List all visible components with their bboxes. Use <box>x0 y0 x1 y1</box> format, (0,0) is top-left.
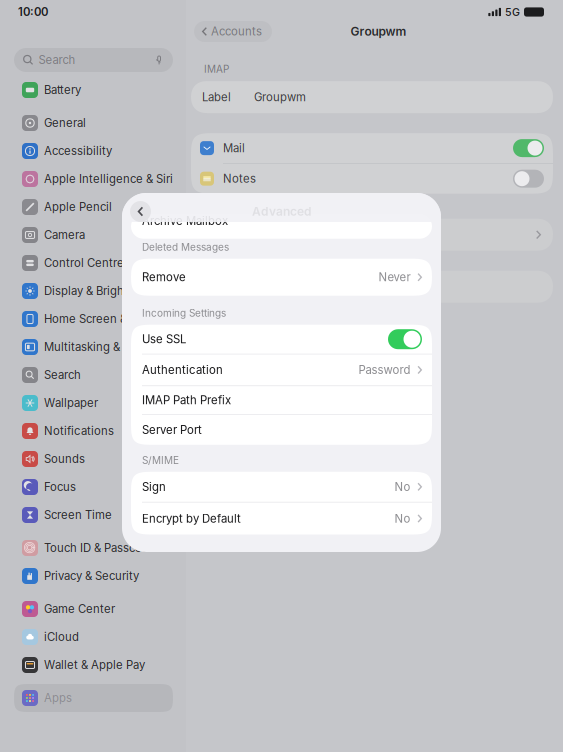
button[interactable]: Home Screen & Apps <box>14 305 173 333</box>
staticText: IMAP <box>204 63 229 75</box>
button[interactable]: Focus <box>14 473 173 501</box>
button[interactable]: Authentication <box>131 354 432 385</box>
staticText: Apps <box>44 691 72 705</box>
button[interactable]: Apple Intelligence & Siri <box>14 165 173 193</box>
staticText: 10:00 <box>18 5 48 19</box>
button[interactable]: Search <box>14 48 173 72</box>
staticText: Notes <box>223 172 256 185</box>
staticText: Sounds <box>44 452 85 466</box>
staticText: Server Port <box>142 423 202 437</box>
button[interactable]: Battery <box>14 76 173 104</box>
button[interactable]: Encrypt by Default <box>131 502 432 534</box>
staticText: No <box>394 480 410 494</box>
staticText: Archive Mailbox <box>142 214 228 228</box>
button[interactable]: Search <box>14 361 173 389</box>
staticText: Search <box>44 368 81 382</box>
staticText: Wallet & Apple Pay <box>44 658 145 672</box>
staticText: Apple Intelligence & Siri <box>44 172 173 186</box>
button[interactable]: Use SSL <box>131 325 432 354</box>
button[interactable]: Accessibility <box>14 137 173 165</box>
staticText: Authentication <box>142 363 223 377</box>
staticText: Groupwm <box>254 90 306 104</box>
staticText: Multitasking & Gestures <box>44 340 172 354</box>
staticText: Screen Time <box>44 508 112 522</box>
staticText: S/MIME <box>142 454 179 466</box>
button[interactable]: Notifications <box>14 417 173 445</box>
staticText: Privacy & Security <box>44 569 139 583</box>
staticText: Deleted Messages <box>142 241 229 253</box>
button[interactable]: Wallpaper <box>14 389 173 417</box>
button[interactable]: Sounds <box>14 445 173 473</box>
staticText: Game Center <box>44 602 115 616</box>
button[interactable]: Multitasking & Gestures <box>14 333 173 361</box>
button[interactable]: Sign <box>131 472 432 502</box>
staticText: General <box>44 116 86 130</box>
staticText: 5G <box>505 5 520 18</box>
button[interactable]: iCloud <box>14 623 173 651</box>
button[interactable]: Accounts <box>194 21 272 42</box>
staticText: Remove <box>142 270 186 284</box>
button[interactable]: Camera <box>14 221 173 249</box>
staticText: Search <box>38 53 75 67</box>
staticText: Password <box>358 363 410 377</box>
staticText: Control Centre <box>44 256 124 270</box>
button[interactable]: Remove <box>131 259 432 296</box>
staticText: Use SSL <box>142 332 186 346</box>
staticText: Touch ID & Passcode <box>44 541 156 555</box>
staticText: IMAP Path Prefix <box>142 393 231 407</box>
staticText: Apple Pencil <box>44 200 112 214</box>
staticText: Accessibility <box>44 144 112 158</box>
button[interactable]: Back <box>130 201 151 222</box>
staticText: Accounts <box>211 25 262 38</box>
staticText: Wallpaper <box>44 396 98 410</box>
staticText: Groupwm <box>350 24 406 39</box>
staticText: Display & Brightness <box>44 284 154 298</box>
staticText: Focus <box>44 480 76 494</box>
staticText: iCloud <box>44 630 79 644</box>
staticText: Incoming Settings <box>142 307 226 319</box>
button[interactable]: Apps <box>14 684 173 712</box>
staticText: No <box>394 512 410 525</box>
staticText: Notifications <box>44 424 114 438</box>
staticText: Battery <box>44 83 81 97</box>
button[interactable]: Apple Pencil <box>14 193 173 221</box>
staticText: Sign <box>142 480 166 494</box>
button[interactable]: General <box>14 109 173 137</box>
button[interactable]: IMAP Path Prefix <box>131 386 432 414</box>
staticText: Home Screen & Apps <box>44 312 158 326</box>
button[interactable]: Touch ID & Passcode <box>14 534 173 562</box>
button[interactable]: Game Center <box>14 595 173 623</box>
staticText: Never <box>378 270 410 284</box>
staticText: Camera <box>44 228 85 242</box>
button[interactable]: Control Centre <box>14 249 173 277</box>
staticText: Encrypt by Default <box>142 512 241 525</box>
staticText: Label <box>202 90 231 104</box>
button[interactable]: Display & Brightness <box>14 277 173 305</box>
button[interactable]: Privacy & Security <box>14 562 173 590</box>
staticText: Mail <box>223 141 245 155</box>
button[interactable]: Screen Time <box>14 501 173 529</box>
staticText: Advanced <box>252 204 311 219</box>
button[interactable]: Wallet & Apple Pay <box>14 651 173 679</box>
button[interactable]: Server Port <box>131 415 432 445</box>
